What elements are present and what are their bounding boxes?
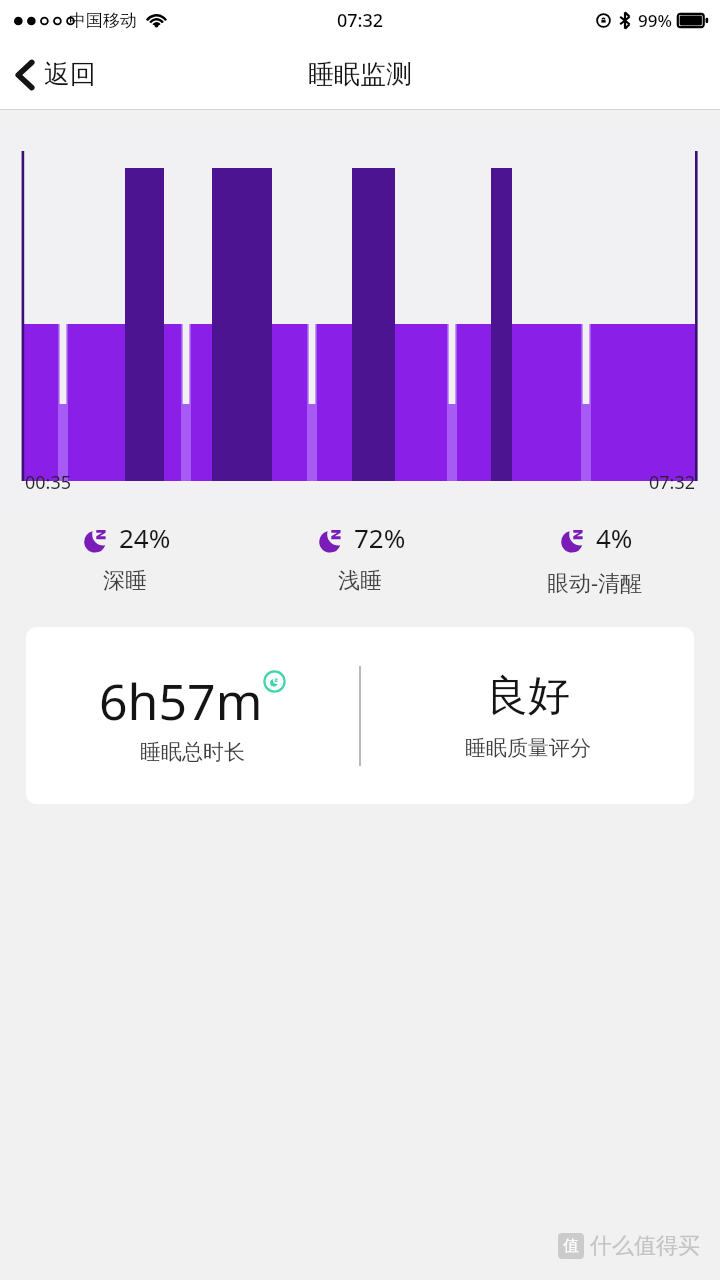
button[interactable]: 72% [242, 517, 477, 595]
staticText: 72% [354, 520, 406, 555]
staticText: 返回 [44, 58, 96, 91]
staticText: 24% [119, 520, 171, 555]
button[interactable]: Back [0, 46, 112, 103]
staticText: 99% [638, 9, 672, 32]
staticText: 良好 [486, 670, 570, 723]
staticText: 睡眠监测 [308, 58, 412, 91]
staticText: 睡眠质量评分 [465, 735, 591, 761]
staticText: 00:35 [25, 470, 72, 495]
other: Back [15, 60, 35, 90]
button[interactable]: 24% [8, 517, 242, 595]
staticText: 浅睡 [338, 567, 382, 595]
button[interactable]: 4% [477, 517, 712, 597]
staticText: 6h57m [99, 667, 263, 735]
staticText: 眼动-清醒 [547, 567, 643, 597]
button[interactable]: 6h57m [26, 627, 694, 804]
staticText: 07:32 [649, 470, 696, 495]
staticText: 值 [563, 1236, 579, 1256]
staticText: 4% [596, 520, 633, 555]
staticText: 深睡 [103, 567, 147, 595]
staticText: 什么值得买 [590, 1232, 700, 1260]
staticText: 中国移动 [69, 10, 137, 31]
staticText: 07:32 [337, 8, 384, 33]
staticText: 睡眠总时长 [140, 739, 245, 765]
